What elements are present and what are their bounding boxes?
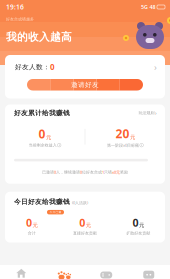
staticText: 玩法规则 (138, 111, 154, 115)
staticText: 奖励 (120, 170, 128, 174)
button[interactable]: 邀请好友 (27, 79, 143, 90)
staticText: 好友累计给我赚钱 (14, 109, 70, 117)
staticText: 当前剩余收益入 (29, 143, 57, 148)
staticText: 20 (115, 126, 129, 141)
staticText: 元 (130, 134, 135, 141)
staticText: 0 (39, 126, 46, 142)
staticText: 元 (32, 222, 37, 229)
button[interactable]: 首页 (0, 266, 42, 279)
staticText: › (154, 61, 157, 73)
staticText: 元 (46, 134, 51, 141)
staticText: 1 (102, 169, 104, 175)
staticText: 直接好友贡献 (73, 231, 97, 235)
staticText: 元 (139, 222, 144, 229)
staticText: 合计 (28, 231, 36, 235)
staticText: 好友人数： (15, 63, 50, 71)
staticText: 0 (79, 215, 85, 230)
staticText: 今日已赚 (49, 211, 61, 214)
staticText: 0 (50, 62, 55, 72)
staticText: 已邀请 (42, 170, 54, 174)
staticText: 我的收入越高 (6, 30, 72, 44)
button[interactable]: 萌宠 (42, 266, 85, 279)
staticText: 48 (149, 3, 155, 11)
staticText: 位好友合成 (82, 170, 102, 174)
button[interactable]: 我的 (127, 266, 170, 279)
staticText: 0 (80, 169, 82, 175)
staticText: 扩散好友贡献 (126, 231, 150, 235)
staticText: 0 (26, 215, 32, 230)
button[interactable]: 玩法规则 (135, 108, 160, 118)
staticText: 只喵 (104, 170, 112, 174)
staticText: 0 (54, 169, 56, 175)
button[interactable]: 游戏 (85, 266, 127, 279)
staticText: 19:16 (6, 3, 24, 11)
staticText: x0元 (112, 169, 120, 175)
staticText: 5G (141, 3, 148, 11)
staticText: 人，继续邀请 (56, 170, 80, 174)
staticText: 0 (133, 215, 139, 230)
staticText: (0人活跃) (72, 200, 88, 205)
staticText: 邀请好友 (71, 81, 99, 89)
staticText: 好友合成喵越多 (6, 17, 34, 21)
staticText: 第一阶段x0目标额 (107, 142, 139, 148)
staticText: 今日好友给我赚钱 (14, 198, 70, 206)
staticText: › (155, 109, 157, 117)
staticText: 元 (86, 222, 91, 229)
button[interactable]: 好友人数： (5, 55, 165, 79)
